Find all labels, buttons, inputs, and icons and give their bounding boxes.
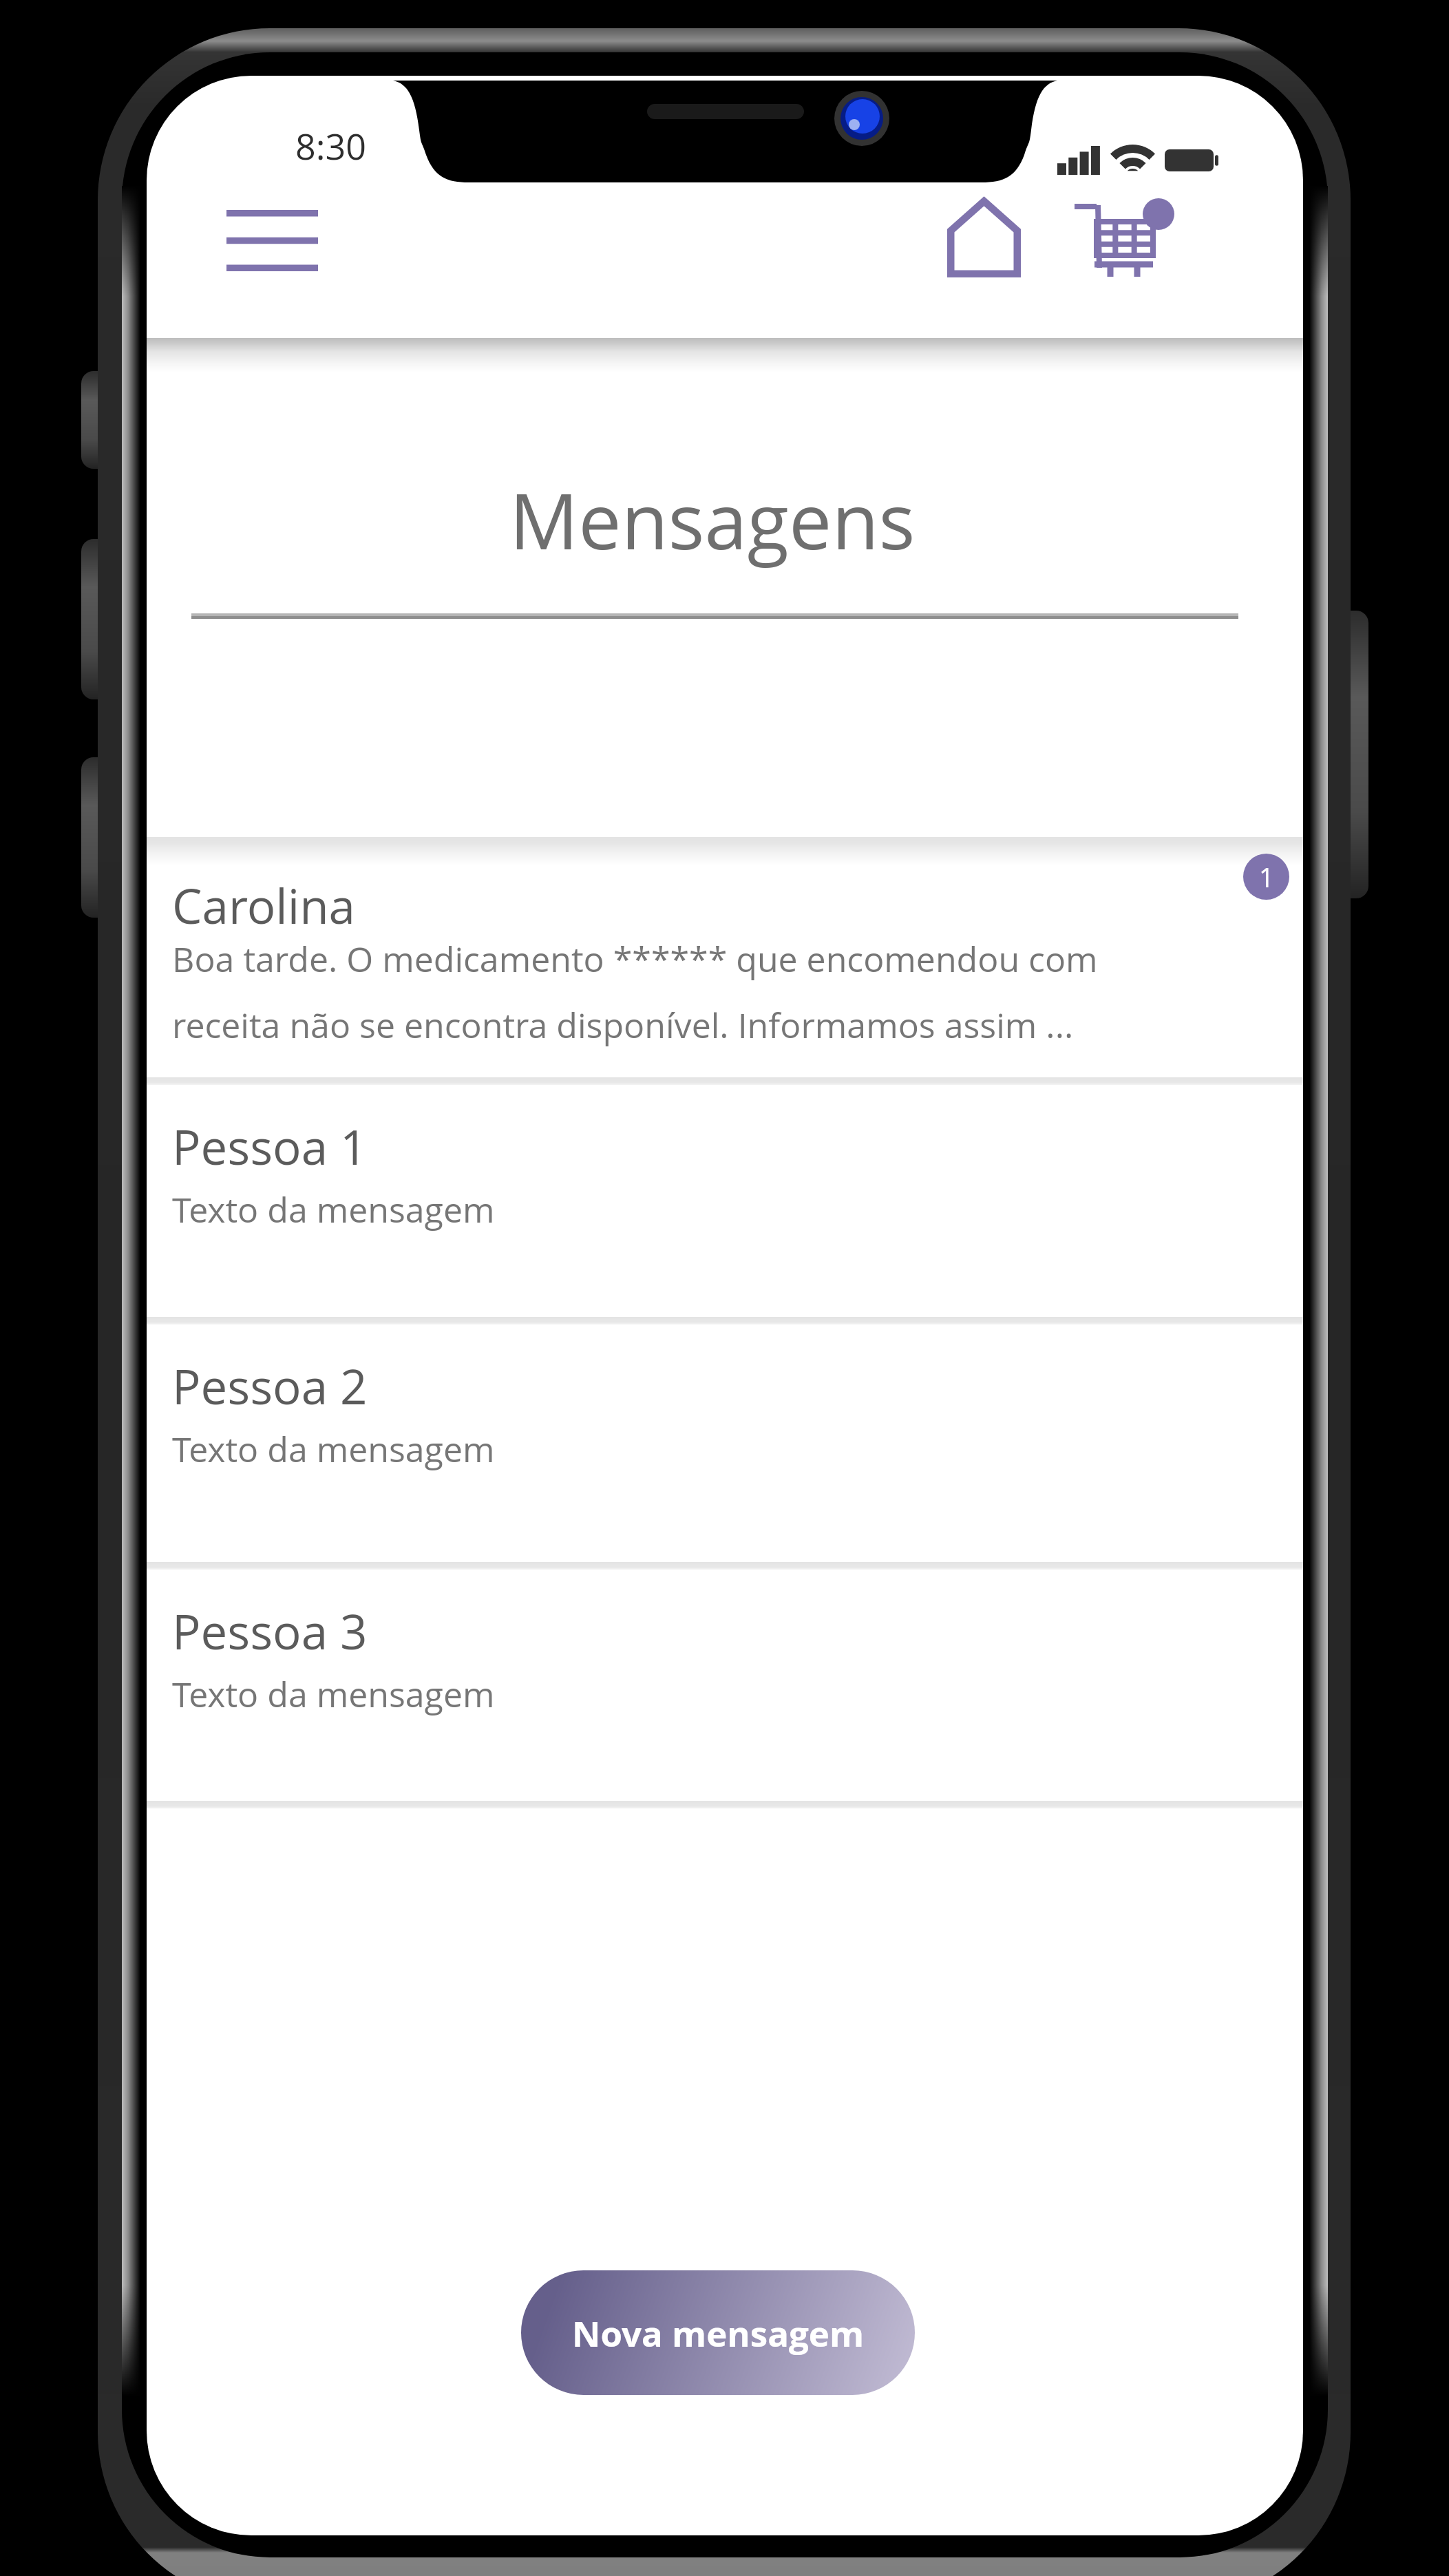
staticText: Texto da mensagem	[172, 1671, 495, 1718]
button[interactable]: Home	[929, 179, 1039, 295]
staticText: Texto da mensagem	[172, 1186, 495, 1233]
staticText: Pessoa 2	[172, 1353, 368, 1418]
button[interactable]: Menu	[209, 184, 335, 297]
staticText: Texto da mensagem	[172, 1426, 495, 1472]
staticText: Pessoa 1	[172, 1114, 368, 1179]
button[interactable]: Nova mensagem	[521, 2270, 915, 2395]
staticText: 1	[1259, 859, 1274, 895]
button[interactable]: Shopping cart	[1059, 184, 1189, 294]
staticText: Carolina	[172, 873, 355, 938]
staticText: Mensagens	[509, 467, 916, 571]
staticText: Pessoa 3	[172, 1598, 368, 1663]
staticText: 8:30	[295, 121, 367, 170]
staticText: Boa tarde. O medicamento ****** que enco…	[172, 936, 1098, 982]
button[interactable]: Pessoa 3	[147, 1562, 1303, 1801]
button[interactable]: Pessoa 2	[147, 1317, 1303, 1562]
button[interactable]: Carolina	[147, 837, 1303, 1077]
staticText: receita não se encontra disponível. Info…	[172, 1002, 1074, 1048]
button[interactable]: Pessoa 1	[147, 1077, 1303, 1317]
staticText: Nova mensagem	[572, 2309, 864, 2356]
